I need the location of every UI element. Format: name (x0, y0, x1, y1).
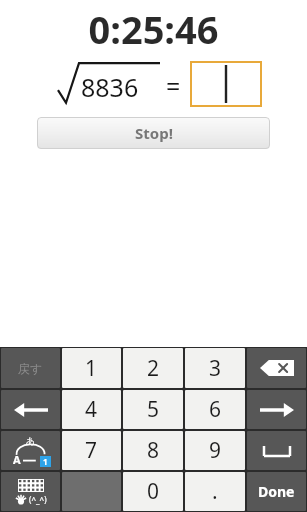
button[interactable]: Move left (1, 390, 60, 429)
staticText: = (166, 69, 181, 103)
button[interactable]: 7 (62, 431, 121, 470)
button[interactable]: 6 (185, 390, 245, 429)
staticText: 7 (85, 436, 98, 465)
button[interactable]: Delete (247, 348, 306, 388)
staticText: 1 (85, 354, 98, 383)
staticText: 8836 (81, 70, 139, 104)
button[interactable]: Done (247, 472, 306, 511)
staticText: 9 (209, 436, 222, 465)
button[interactable]: 1 (62, 348, 121, 388)
button[interactable]: Stop! (37, 117, 270, 149)
button[interactable]: 3 (185, 348, 245, 388)
button[interactable]: Switch input mode (1, 431, 60, 470)
staticText: 1 (43, 456, 48, 467)
staticText: A (13, 452, 21, 467)
button[interactable]: Undo (1, 348, 60, 388)
staticText: 5 (147, 395, 160, 424)
button[interactable]: Space (247, 431, 306, 470)
staticText: 戻す (18, 361, 43, 376)
button[interactable]: Move right (247, 390, 306, 429)
button[interactable]: . (185, 472, 245, 511)
staticText: Stop! (135, 123, 173, 143)
button[interactable]: 4 (62, 390, 121, 429)
button[interactable]: 8 (123, 431, 183, 470)
staticText: 4 (85, 395, 98, 424)
staticText: (^_^) (27, 494, 47, 505)
button[interactable]: 9 (185, 431, 245, 470)
staticText: 6 (209, 395, 222, 424)
staticText: . (212, 477, 218, 506)
staticText: 3 (209, 354, 222, 383)
staticText: 2 (147, 354, 160, 383)
staticText: あ (26, 435, 36, 446)
staticText: 0 (147, 477, 160, 506)
button[interactable]: 0 (123, 472, 183, 511)
button[interactable] (190, 61, 262, 107)
staticText: 0:25:46 (88, 3, 219, 55)
staticText: 8 (147, 436, 160, 465)
button[interactable]: Keyboard settings (1, 472, 60, 511)
button[interactable]: 2 (123, 348, 183, 388)
staticText: Done (258, 482, 295, 501)
button[interactable]: 5 (123, 390, 183, 429)
